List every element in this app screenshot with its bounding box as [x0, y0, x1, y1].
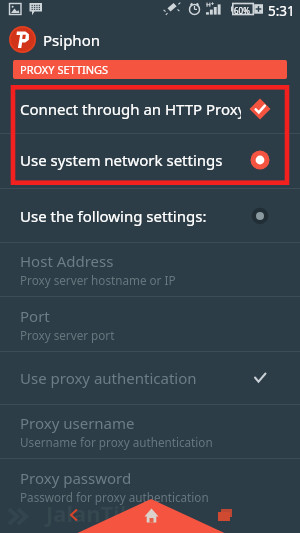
staticText: Psiphon — [43, 30, 100, 50]
button[interactable]: PROXY SETTINGS — [13, 60, 287, 79]
button[interactable]: Recent apps — [212, 504, 238, 530]
button[interactable]: Proxy username — [0, 405, 300, 458]
staticText: Use the following settings: — [20, 206, 207, 226]
other: Selected — [247, 147, 273, 173]
staticText: Use proxy authentication — [20, 368, 197, 388]
button[interactable]: Port — [0, 297, 300, 351]
button[interactable]: Use the following settings: — [0, 189, 300, 242]
other: Checked — [247, 96, 273, 122]
button[interactable]: Host Address — [0, 243, 300, 296]
button[interactable]: Home — [138, 502, 164, 528]
other: Unselected — [247, 203, 273, 229]
staticText: Password for proxy authentication — [20, 489, 209, 505]
button[interactable]: Use proxy authentication — [0, 352, 300, 404]
staticText: Proxy server port — [20, 327, 115, 343]
staticText: PROXY SETTINGS — [20, 62, 109, 77]
button[interactable]: Proxy password — [0, 459, 300, 513]
staticText: Port — [20, 306, 50, 326]
staticText: Use system network settings — [20, 150, 223, 170]
staticText: Proxy username — [20, 413, 135, 433]
staticText: Host Address — [20, 251, 114, 271]
staticText: 60% — [234, 5, 250, 16]
staticText: 5:31 — [268, 2, 295, 20]
staticText: Connect through an HTTP Proxy — [20, 99, 241, 119]
staticText: Proxy server hostname or IP — [20, 272, 176, 288]
other: Enabled — [249, 367, 271, 389]
button[interactable]: Back — [61, 502, 86, 527]
staticText: Proxy password — [20, 468, 132, 488]
button[interactable]: Connect through an HTTP Proxy — [0, 85, 300, 133]
staticText: Username for proxy authentication — [20, 434, 213, 450]
staticText: JalanTikus — [46, 498, 159, 528]
button[interactable]: Use system network settings — [0, 134, 300, 185]
